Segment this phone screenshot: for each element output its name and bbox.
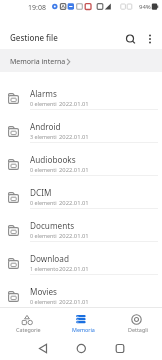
staticText: Categorie <box>16 326 41 333</box>
staticText: 0 elementi <box>30 232 57 239</box>
staticText: Gestione file <box>10 32 58 43</box>
staticText: Memoria <box>72 326 95 333</box>
staticText: 2022.01.01 <box>59 199 89 207</box>
button[interactable]: Movies <box>0 275 162 308</box>
staticText: Movies <box>30 286 58 297</box>
staticText: 0 elementi <box>30 166 57 173</box>
staticText: 2022.01.01 <box>59 298 89 306</box>
staticText: Download <box>30 253 69 264</box>
staticText: DCIM <box>30 187 52 198</box>
staticText: Memoria interna <box>10 57 66 67</box>
button[interactable] <box>67 336 95 360</box>
button[interactable]: Documents <box>0 209 162 242</box>
staticText: 0 elementi <box>30 199 57 206</box>
staticText: 94% <box>139 3 151 11</box>
button[interactable]: Android <box>0 110 162 143</box>
staticText: Alarms <box>30 88 57 99</box>
staticText: 2022.01.01 <box>59 232 89 240</box>
staticText: 0 elementi <box>30 100 57 107</box>
button[interactable]: Memoria interna <box>0 49 162 72</box>
button[interactable] <box>29 336 57 360</box>
staticText: 1 elemento <box>30 265 59 272</box>
staticText: Dettagli <box>128 326 148 333</box>
staticText: 2022.01.01 <box>59 133 89 141</box>
button[interactable] <box>106 336 134 360</box>
staticText: 0 elementi <box>30 298 57 305</box>
button[interactable]: Memoria <box>57 311 105 335</box>
button[interactable]: Download <box>0 242 162 275</box>
staticText: 19:08 <box>28 3 46 13</box>
button[interactable]: Audiobooks <box>0 143 162 176</box>
staticText: 3 elementi <box>30 133 57 140</box>
staticText: Android <box>30 121 61 132</box>
staticText: 2022.01.01 <box>59 265 89 273</box>
button[interactable] <box>121 29 139 48</box>
staticText: Documents <box>30 220 75 231</box>
button[interactable]: Categorie <box>3 311 50 335</box>
button[interactable] <box>143 29 157 48</box>
staticText: 2022.01.01 <box>59 100 89 108</box>
staticText: 2022.01.01 <box>59 166 89 174</box>
button[interactable]: Dettagli <box>112 311 160 335</box>
button[interactable]: DCIM <box>0 176 162 209</box>
staticText: Audiobooks <box>30 154 76 165</box>
button[interactable]: Alarms <box>0 77 162 110</box>
